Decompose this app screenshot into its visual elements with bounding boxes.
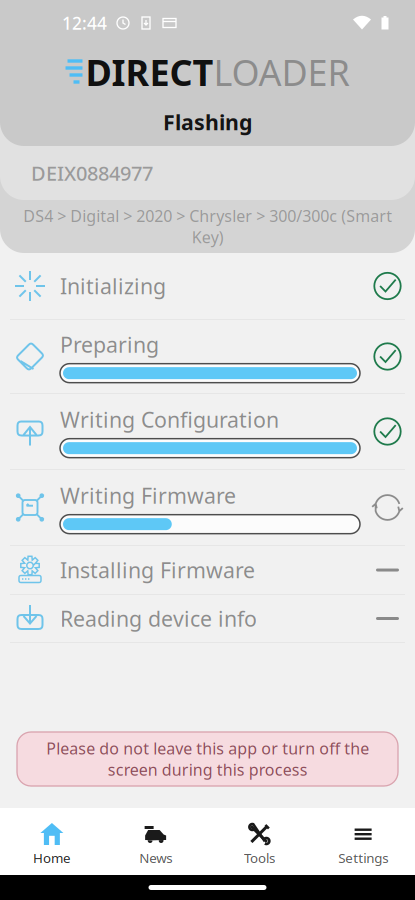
staticText: Please do not leave this app or turn off…	[46, 738, 369, 780]
staticText: Settings	[338, 849, 388, 867]
button[interactable]: Tools	[207, 808, 311, 875]
staticText: Tools	[244, 849, 275, 867]
staticText: Reading device info	[60, 604, 257, 633]
staticText: DEIX0884977	[31, 160, 153, 186]
staticText: News	[139, 849, 172, 867]
staticText: Writing Firmware	[60, 481, 236, 510]
button[interactable]: Settings	[311, 808, 415, 875]
staticText: Home	[33, 849, 71, 867]
button[interactable]: Home	[0, 808, 104, 875]
staticText: 12:44	[62, 11, 107, 34]
staticText: Writing Configuration	[60, 405, 279, 434]
staticText: Initializing	[60, 272, 166, 300]
staticText: LOADER	[213, 48, 349, 96]
staticText: DIRECT	[85, 48, 213, 96]
button[interactable]: News	[104, 808, 208, 875]
staticText: DS4 > Digital > 2020 > Chrysler > 300/30…	[23, 205, 392, 248]
staticText: Flashing	[163, 108, 252, 136]
staticText: Installing Firmware	[60, 556, 255, 584]
staticText: Preparing	[60, 330, 159, 359]
